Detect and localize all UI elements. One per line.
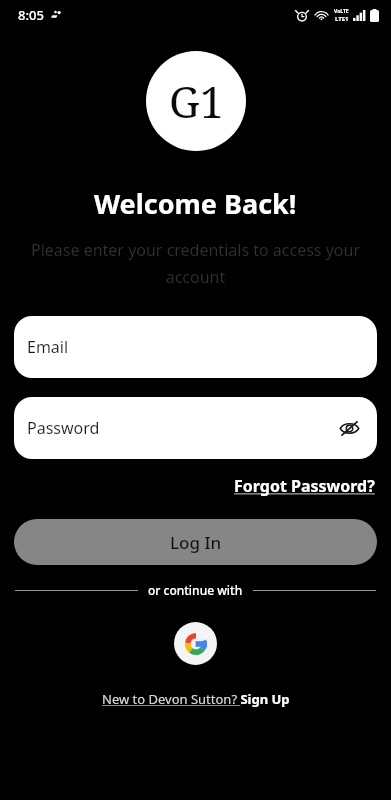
staticText: Log In xyxy=(170,531,222,554)
staticText: LTE1 xyxy=(335,15,349,23)
staticText: 8:05 xyxy=(18,6,44,24)
staticText: Password xyxy=(27,417,100,439)
staticText: Please enter your credentials to access … xyxy=(30,239,361,288)
staticText: Email xyxy=(27,336,69,358)
staticText: Forgot Password? xyxy=(234,475,375,497)
staticText: Welcome Back! xyxy=(94,185,297,222)
button[interactable]: Email xyxy=(14,316,377,378)
staticText: VoLTE xyxy=(334,8,349,15)
button[interactable]: Forgot Password? xyxy=(232,469,377,503)
button[interactable]: Password xyxy=(14,397,377,459)
button[interactable]: Continue with Google xyxy=(174,622,217,665)
staticText: or continue with xyxy=(148,582,243,598)
staticText: New to Devon Sutton? Sign Up xyxy=(102,690,290,708)
button[interactable]: Log In xyxy=(14,519,377,565)
button[interactable]: Toggle password visibility xyxy=(335,414,363,442)
staticText: G1 xyxy=(169,72,224,131)
button[interactable]: New to Devon Sutton? Sign Up xyxy=(96,686,296,712)
